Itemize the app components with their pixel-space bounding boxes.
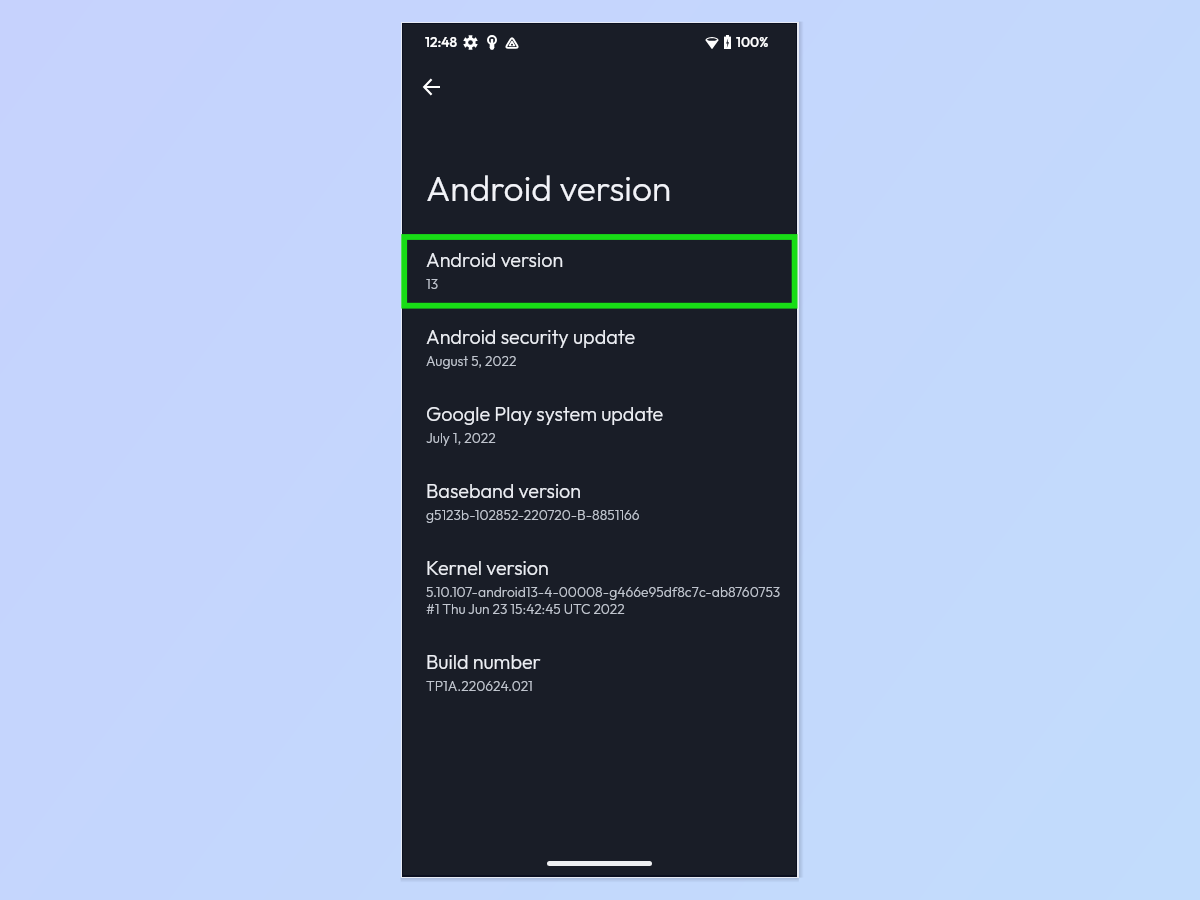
staticText: Kernel version — [426, 555, 549, 580]
button[interactable]: Baseband version — [403, 472, 796, 549]
staticText: Android version — [426, 247, 564, 272]
button[interactable]: Android version — [403, 241, 796, 318]
button[interactable]: Kernel version — [403, 549, 796, 643]
staticText: Build number — [426, 649, 541, 674]
staticText: TP1A.220624.021 — [426, 677, 533, 694]
button[interactable]: Google Play system update — [403, 395, 796, 472]
staticText: 13 — [426, 275, 439, 292]
button[interactable]: Build number — [403, 643, 796, 720]
staticText: Android version — [426, 166, 672, 210]
staticText: August 5, 2022 — [426, 352, 517, 369]
staticText: 100% — [736, 33, 769, 51]
staticText: Android security update — [426, 324, 636, 349]
staticText: July 1, 2022 — [426, 429, 496, 446]
staticText: 12:48 — [425, 33, 458, 51]
staticText: g5123b-102852-220720-B-8851166 — [426, 506, 640, 523]
staticText: #1 Thu Jun 23 15:42:45 UTC 2022 — [426, 600, 625, 617]
button[interactable]: Back — [407, 63, 455, 111]
staticText: Baseband version — [426, 478, 582, 503]
staticText: Google Play system update — [426, 401, 664, 426]
staticText: 5.10.107-android13-4-00008-g466e95df8c7c… — [426, 583, 781, 600]
button[interactable]: Android security update — [403, 318, 796, 395]
